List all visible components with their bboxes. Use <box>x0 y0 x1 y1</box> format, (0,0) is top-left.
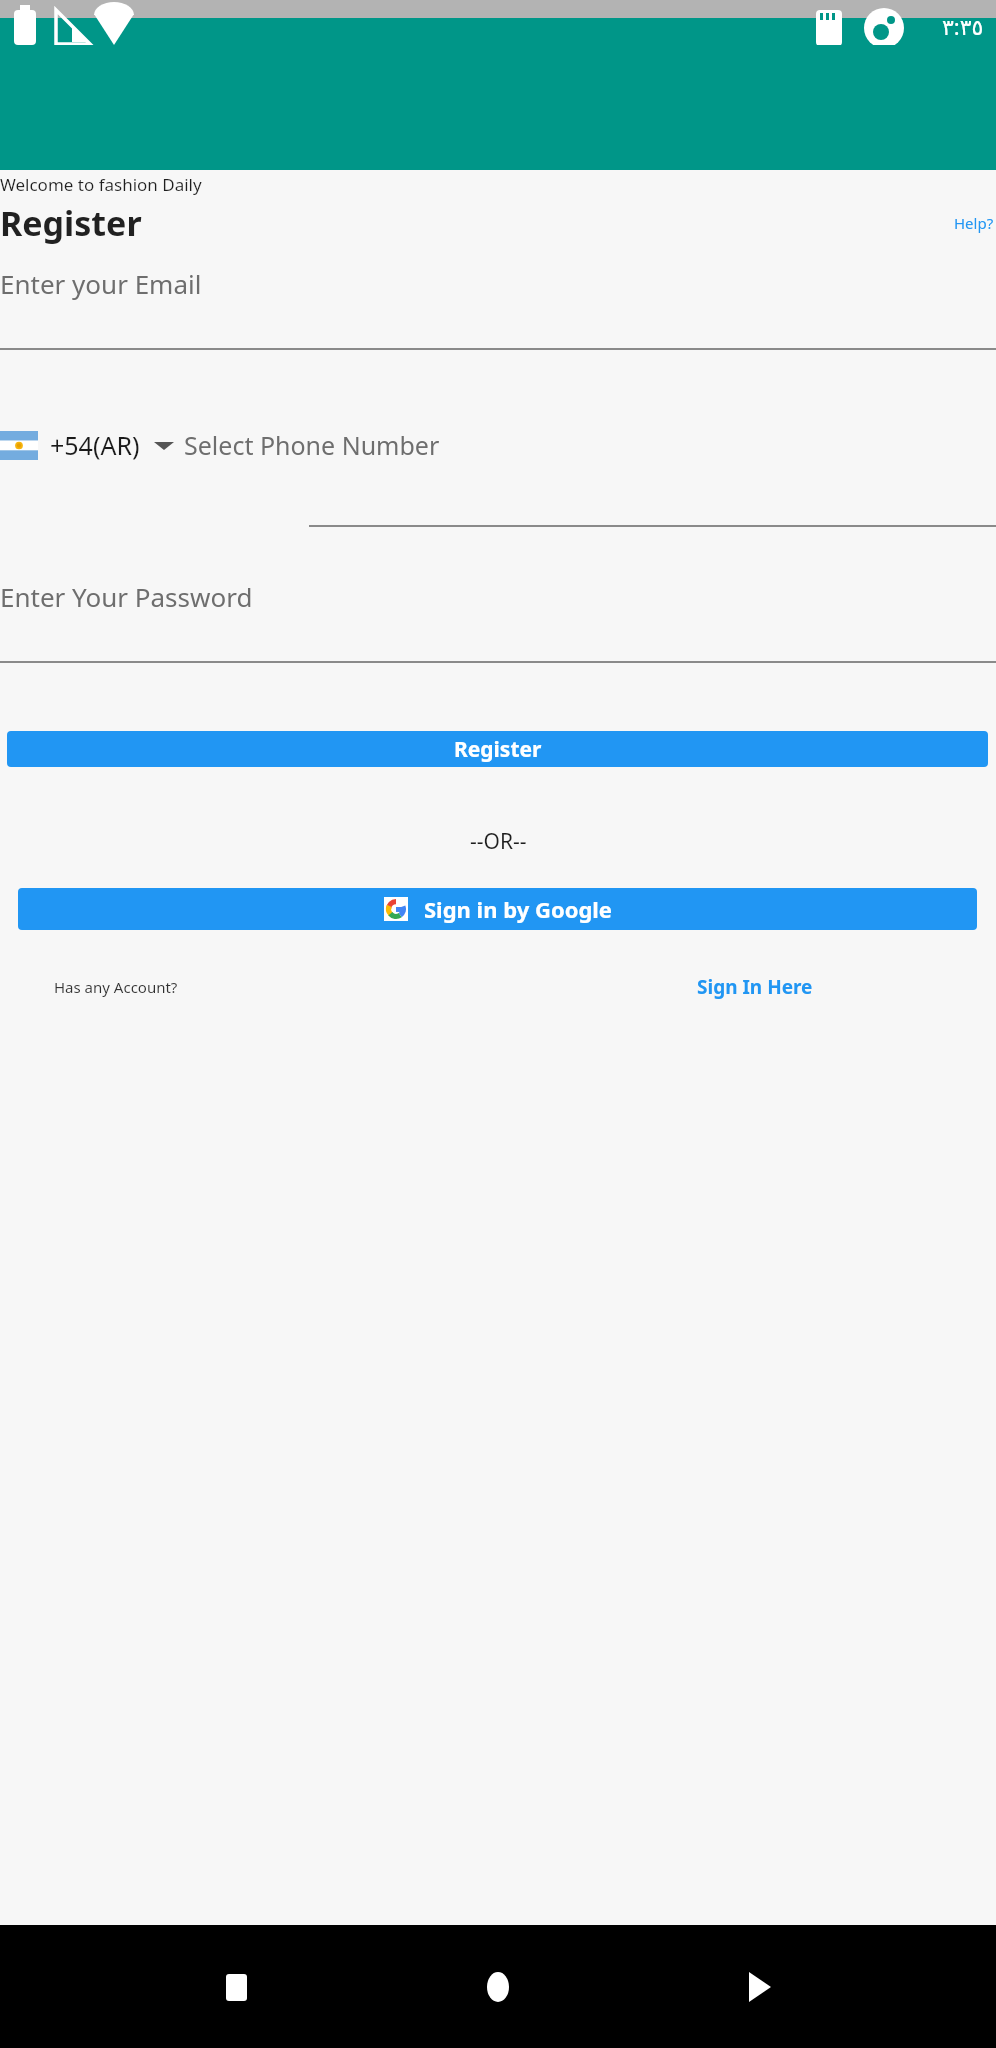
staticText: Sign in by Google <box>424 894 612 924</box>
staticText: --OR-- <box>470 827 527 856</box>
staticText: Select Phone Number <box>184 428 440 462</box>
button[interactable]: Register <box>7 731 988 767</box>
staticText: Enter your Email <box>0 266 202 301</box>
staticText: Welcome to fashion Daily <box>0 173 202 196</box>
button[interactable]: Help? <box>952 207 996 239</box>
button[interactable]: Home <box>472 1961 524 2013</box>
button[interactable]: Recent apps <box>210 1961 262 2013</box>
staticText: +54(AR) <box>50 428 140 462</box>
staticText: Sign In Here <box>697 974 813 1000</box>
button[interactable]: Sign in by Google <box>18 888 977 930</box>
staticText: Help? <box>954 213 994 233</box>
button[interactable]: Sign In Here <box>697 974 813 1000</box>
button[interactable]: Enter your Email <box>0 250 996 350</box>
button[interactable]: Has any Account? <box>54 977 178 997</box>
staticText: ٣:٣٥ <box>942 11 984 41</box>
staticText: Register <box>0 200 142 246</box>
button[interactable]: Back <box>734 1961 786 2013</box>
staticText: Has any Account? <box>54 977 178 997</box>
staticText: Enter Your Password <box>0 579 253 614</box>
staticText: Register <box>454 735 542 764</box>
button[interactable]: Enter Your Password <box>0 565 996 663</box>
button[interactable]: Select country code <box>0 428 182 462</box>
